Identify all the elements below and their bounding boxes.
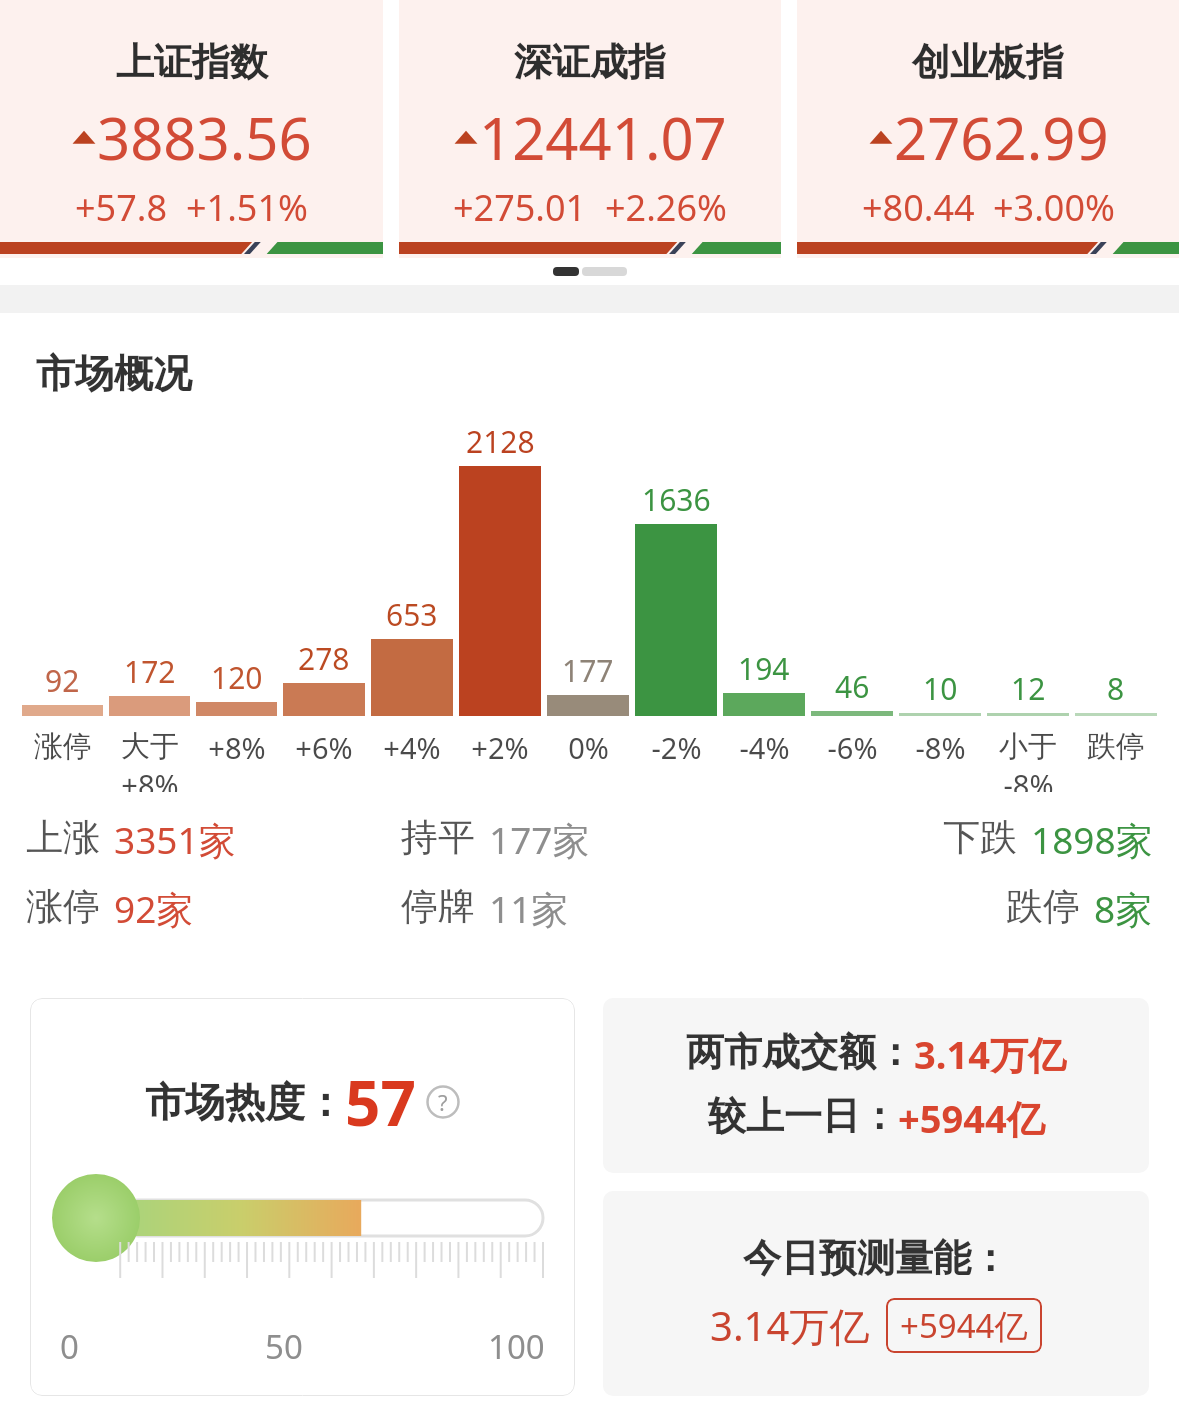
staticText: 停牌 <box>401 883 475 930</box>
button[interactable]: 今日预测量能： <box>603 1191 1149 1396</box>
staticText: 2762.99 <box>894 98 1109 177</box>
staticText: 上涨 <box>26 814 100 861</box>
button[interactable]: 深证成指 <box>399 0 781 258</box>
staticText: 3883.56 <box>97 98 312 177</box>
staticText: -8% <box>915 728 966 767</box>
staticText: 3.14万亿 <box>914 1028 1066 1080</box>
staticText: 10 <box>923 668 958 709</box>
staticText: +80.44 <box>862 183 975 232</box>
staticText: 3.14万亿 <box>710 1298 870 1353</box>
staticText: 3351家 <box>114 814 236 865</box>
staticText: 50 <box>265 1324 303 1369</box>
staticText: 172 <box>124 651 176 692</box>
staticText: 12441.07 <box>479 98 727 177</box>
staticText: 大于 <box>121 728 179 765</box>
staticText: 下跌 <box>943 814 1017 861</box>
button[interactable]: 创业板指 <box>797 0 1179 258</box>
staticText: +2% <box>471 728 529 767</box>
staticText: 2128 <box>466 421 535 462</box>
staticText: 1636 <box>642 479 711 520</box>
staticText: 跌停 <box>1006 883 1080 930</box>
staticText: ? <box>438 1087 448 1117</box>
staticText: 涨停 <box>34 728 92 765</box>
staticText: 194 <box>738 648 790 689</box>
staticText: +5944亿 <box>900 1303 1028 1348</box>
staticText: 100 <box>488 1324 545 1369</box>
staticText: 278 <box>298 638 350 679</box>
staticText: 跌停 <box>1087 728 1145 765</box>
staticText: 177家 <box>489 814 590 865</box>
staticText: +2.26% <box>605 183 727 232</box>
staticText: 46 <box>835 666 870 707</box>
staticText: +1.51% <box>186 183 308 232</box>
staticText: 上证指数 <box>116 38 268 86</box>
staticText: +275.01 <box>453 183 587 232</box>
staticText: 市场热度： <box>145 1077 345 1127</box>
staticText: 92 <box>45 660 80 701</box>
staticText: 持平 <box>401 814 475 861</box>
staticText: 涨停 <box>26 883 100 930</box>
staticText: 653 <box>386 594 438 635</box>
button[interactable]: 说明 <box>426 1085 460 1119</box>
staticText: 57 <box>345 1060 416 1144</box>
staticText: 12 <box>1011 668 1046 709</box>
staticText: 创业板指 <box>912 38 1064 86</box>
button[interactable]: 上证指数 <box>0 0 383 258</box>
staticText: +57.8 <box>75 183 168 232</box>
button[interactable]: 市场热度： <box>30 998 575 1396</box>
staticText: +4% <box>383 728 441 767</box>
staticText: +3.00% <box>993 183 1115 232</box>
staticText: +8% <box>208 728 266 767</box>
staticText: 小于 <box>999 728 1057 765</box>
staticText: -6% <box>827 728 878 767</box>
staticText: +8% <box>121 765 179 792</box>
staticText: 市场概况 <box>36 349 192 398</box>
staticText: 8家 <box>1094 883 1153 934</box>
staticText: 1898家 <box>1031 814 1153 865</box>
staticText: -8% <box>1003 765 1054 792</box>
staticText: 0% <box>568 728 609 767</box>
staticText: 8 <box>1107 668 1125 709</box>
staticText: -4% <box>739 728 790 767</box>
staticText: 177 <box>562 650 614 691</box>
staticText: 深证成指 <box>514 38 666 86</box>
staticText: 120 <box>211 657 263 698</box>
staticText: -2% <box>651 728 702 767</box>
staticText: 0 <box>60 1324 79 1369</box>
staticText: 今日预测量能： <box>743 1234 1009 1282</box>
button[interactable]: 两市成交额： <box>603 998 1149 1173</box>
staticText: 两市成交额： <box>686 1028 914 1076</box>
staticText: +5944亿 <box>898 1092 1045 1144</box>
staticText: 较上一日： <box>708 1092 898 1140</box>
staticText: 11家 <box>489 883 569 934</box>
staticText: 92家 <box>114 883 194 934</box>
staticText: +6% <box>295 728 353 767</box>
